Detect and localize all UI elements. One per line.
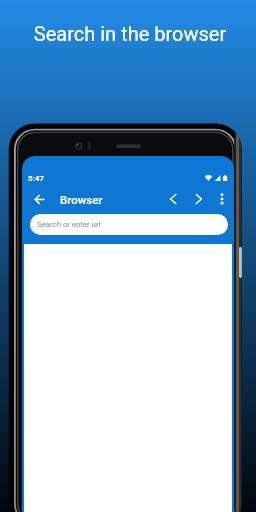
staticText: Search in the browser <box>2 22 256 45</box>
staticText: Search or enter url <box>37 220 101 229</box>
staticText: 5:47 <box>28 174 45 183</box>
staticText: Browser <box>60 193 103 206</box>
button[interactable]: Next page <box>191 191 207 207</box>
button[interactable]: Navigate up <box>31 191 48 208</box>
button[interactable]: More options <box>215 192 229 206</box>
button[interactable]: Search or enter url <box>30 214 228 235</box>
button[interactable]: Previous page <box>165 191 181 207</box>
